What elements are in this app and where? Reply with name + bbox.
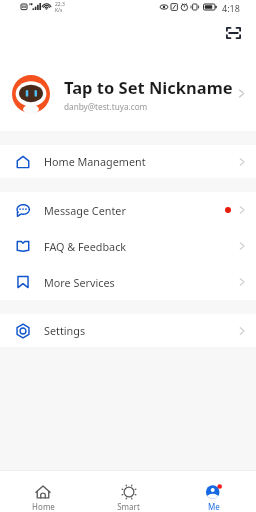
button[interactable]: Smart	[86, 471, 171, 512]
button[interactable]: FAQ & Feedback	[0, 228, 256, 264]
staticText: danby@test.tuya.com	[64, 101, 148, 112]
staticText: Home Management	[44, 154, 146, 169]
staticText: More Services	[44, 275, 115, 290]
button[interactable]: Home Management	[0, 145, 256, 178]
button[interactable]: Me	[171, 471, 256, 512]
staticText: Tap to Set Nickname	[64, 76, 233, 98]
staticText: Me	[208, 501, 220, 512]
button[interactable]: Scan QR code	[221, 20, 246, 45]
staticText: Settings	[44, 323, 86, 338]
staticText: FAQ & Feedback	[44, 239, 127, 254]
staticText: 22.3	[55, 1, 65, 8]
button[interactable]: Home	[0, 471, 86, 512]
button[interactable]: Settings	[0, 314, 256, 347]
staticText: Smart	[117, 501, 140, 512]
button[interactable]: More Services	[0, 264, 256, 300]
staticText: Message Center	[44, 203, 126, 218]
button[interactable]: Tap to Set Nickname	[0, 66, 256, 121]
staticText: Home	[32, 501, 55, 512]
button[interactable]: Message Center	[0, 192, 256, 228]
staticText: K/s	[55, 7, 63, 14]
staticText: 4:18	[222, 2, 240, 14]
